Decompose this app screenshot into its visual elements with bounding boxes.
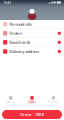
staticText: Profile xyxy=(48,100,58,104)
button[interactable]: Profile xyxy=(43,94,64,105)
staticText: Delivery address xyxy=(9,49,39,54)
staticText: 9:41 xyxy=(4,0,11,5)
staticText: Saved cards xyxy=(9,40,30,45)
button[interactable]: Basket xyxy=(21,94,43,105)
button[interactable]: Saved cards xyxy=(0,38,64,47)
button[interactable]: Personal info xyxy=(0,20,64,29)
staticText: Basket xyxy=(28,100,36,104)
button[interactable]: Delivery address xyxy=(0,47,64,56)
button[interactable]: Orders xyxy=(0,29,64,38)
button[interactable]: Order · 100 ₽ xyxy=(2,110,62,119)
staticText: Order · 100 ₽ xyxy=(20,112,44,117)
staticText: Menu xyxy=(7,100,15,104)
staticText: Orders xyxy=(9,31,22,36)
button[interactable]: Menu xyxy=(0,94,21,105)
staticText: Personal info xyxy=(9,22,31,27)
